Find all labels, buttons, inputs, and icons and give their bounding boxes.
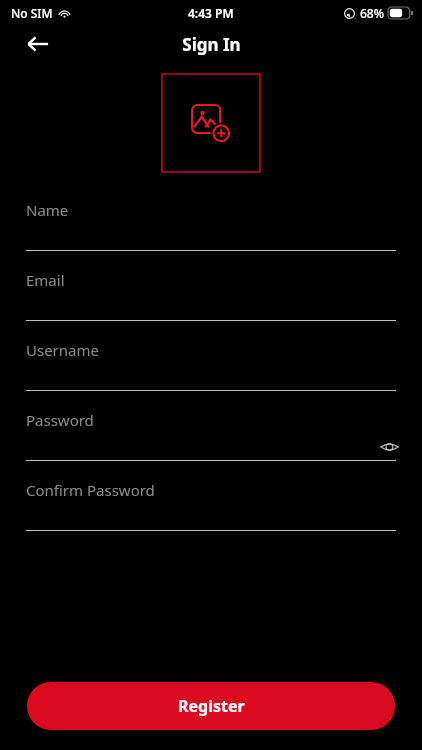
staticText: No SIM bbox=[11, 5, 53, 21]
staticText: Password bbox=[26, 410, 94, 430]
staticText: Confirm Password bbox=[26, 480, 155, 500]
button[interactable]: Show password bbox=[376, 434, 402, 460]
staticText: Name bbox=[26, 200, 69, 220]
button[interactable]: Email bbox=[0, 266, 422, 336]
button[interactable]: Add photo bbox=[162, 74, 260, 172]
staticText: 68% bbox=[360, 5, 384, 21]
button[interactable]: Password bbox=[0, 406, 422, 476]
staticText: Email bbox=[26, 270, 65, 290]
staticText: Register bbox=[178, 695, 245, 717]
button[interactable]: Register bbox=[27, 682, 395, 730]
button[interactable]: Back bbox=[16, 22, 60, 66]
staticText: 4:43 PM bbox=[188, 5, 234, 21]
button[interactable]: Name bbox=[0, 196, 422, 266]
staticText: Sign In bbox=[182, 33, 241, 56]
staticText: Username bbox=[26, 340, 99, 360]
button[interactable]: Username bbox=[0, 336, 422, 406]
button[interactable]: Confirm Password bbox=[0, 476, 422, 546]
